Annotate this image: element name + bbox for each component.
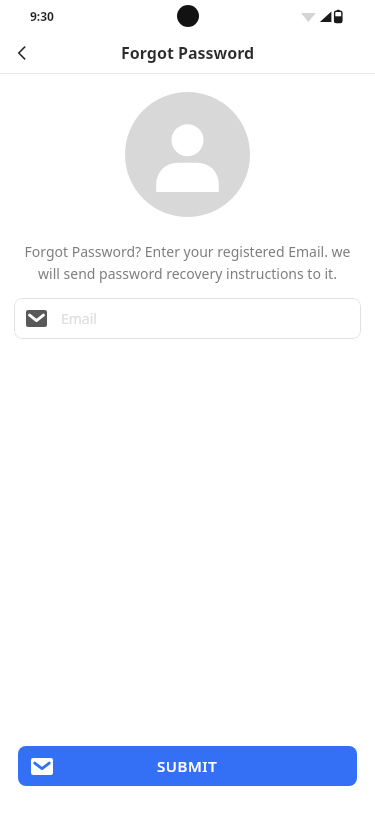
staticText: Forgot Password <box>121 42 255 64</box>
staticText: Forgot Password? Enter your registered E… <box>22 242 353 283</box>
button[interactable]: Email <box>14 298 361 339</box>
button[interactable]: SUBMIT <box>18 746 357 786</box>
staticText: 9:30 <box>30 8 54 24</box>
staticText: Email <box>61 309 97 328</box>
staticText: SUBMIT <box>157 756 218 776</box>
button[interactable]: Back <box>0 32 44 74</box>
